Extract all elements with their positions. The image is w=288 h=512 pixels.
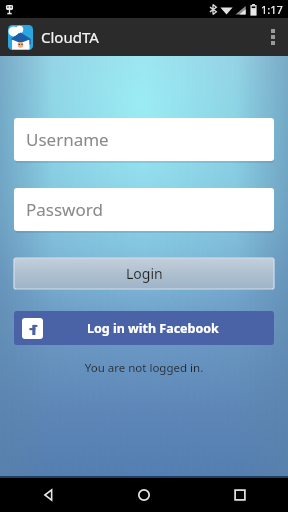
button[interactable]: Recent apps [192,478,288,512]
staticText: Password [26,198,103,221]
staticText: Username [26,128,109,151]
staticText: Login [126,264,163,283]
button[interactable]: Username [14,118,274,161]
button[interactable]: Login [14,258,274,289]
button[interactable]: More options [258,18,288,56]
staticText: CloudTA [41,27,99,47]
button[interactable]: Back [0,478,96,512]
button[interactable]: Password [14,188,274,231]
button[interactable]: Log in with Facebook [14,311,274,345]
staticText: Log in with Facebook [87,320,219,337]
staticText: 1:17 [261,2,283,17]
staticText: You are not logged in. [0,360,288,376]
button[interactable]: Home [96,478,192,512]
